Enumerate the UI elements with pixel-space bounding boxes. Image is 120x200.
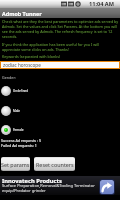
staticText: Set params bbox=[1, 161, 30, 168]
button[interactable]: Male bbox=[0, 105, 120, 116]
button[interactable]: Undefined bbox=[0, 85, 120, 96]
staticText: 11:04 AM bbox=[89, 0, 114, 8]
staticText: Keywords (separated with blanks) bbox=[2, 54, 61, 59]
staticText: Innovatech Products bbox=[2, 177, 62, 185]
staticText: Surface Preparation,Removal&Tooling Term… bbox=[2, 183, 95, 193]
staticText: Admob Tunner bbox=[2, 10, 42, 17]
staticText: Check what are they the best parameters … bbox=[2, 19, 119, 39]
staticText: Success Ad requests : 5 bbox=[1, 138, 42, 143]
staticText: Gender: bbox=[2, 75, 16, 80]
button[interactable]: Set params bbox=[1, 157, 30, 171]
button[interactable]: zodiac horoscope bbox=[0, 61, 120, 69]
staticText: Female bbox=[13, 128, 24, 132]
button[interactable]: Female bbox=[0, 124, 120, 135]
staticText: Failed Ad requests: 1 bbox=[1, 143, 37, 148]
staticText: zodiac horoscope bbox=[3, 62, 41, 68]
staticText: Undefined bbox=[13, 89, 29, 93]
button[interactable]: Reset counters bbox=[34, 157, 75, 171]
staticText: If you think the application has been us… bbox=[2, 42, 113, 52]
staticText: Male bbox=[13, 109, 21, 113]
staticText: Reset counters bbox=[36, 161, 74, 168]
button[interactable]: Innovatech Products bbox=[0, 176, 120, 195]
button[interactable]: Open advertisement bbox=[100, 180, 114, 194]
